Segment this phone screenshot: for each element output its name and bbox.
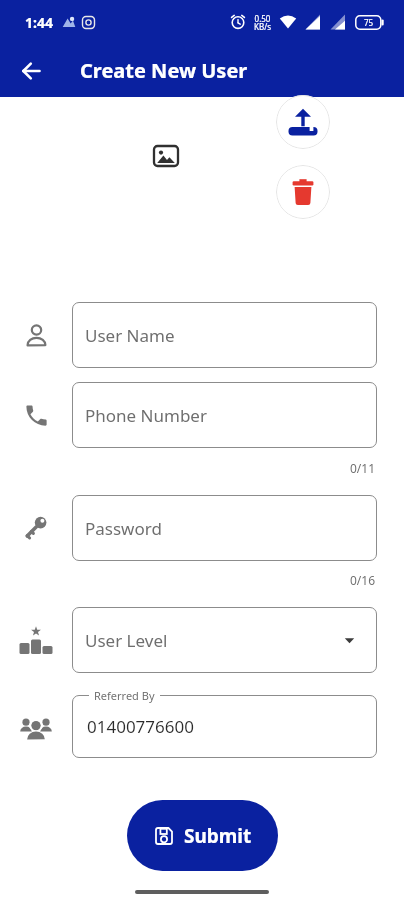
button[interactable]: Password <box>72 495 377 561</box>
staticText: 0.50 KB/s <box>254 13 271 32</box>
staticText: User Level <box>85 629 168 652</box>
staticText: Create New User <box>80 57 248 84</box>
button[interactable] <box>276 95 330 149</box>
button[interactable]: Submit <box>127 800 278 871</box>
staticText: Password <box>85 517 162 540</box>
button[interactable] <box>20 60 42 82</box>
staticText: 1:44 <box>25 13 53 32</box>
button[interactable]: User Name <box>72 302 377 368</box>
staticText: 01400776600 <box>87 715 194 738</box>
button[interactable]: Phone Number <box>72 382 377 448</box>
staticText: 75 <box>364 17 374 28</box>
staticText: User Name <box>85 324 175 347</box>
staticText: 0/11 <box>350 460 376 476</box>
button[interactable] <box>276 165 330 219</box>
staticText: Referred By <box>94 688 155 703</box>
button[interactable]: User Level <box>72 607 377 673</box>
staticText: Submit <box>184 823 252 849</box>
staticText: 0/16 <box>350 572 376 588</box>
staticText: Phone Number <box>85 404 207 427</box>
button[interactable]: 01400776600 <box>72 695 377 758</box>
